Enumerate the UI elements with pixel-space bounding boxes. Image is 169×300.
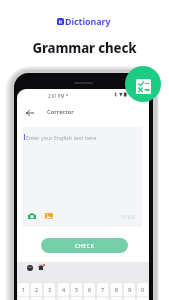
staticText: 5 <box>75 286 79 293</box>
button[interactable]: Dictionary <box>57 15 111 27</box>
button[interactable]: 4 <box>58 283 69 296</box>
staticText: Enter your English text here <box>26 134 97 141</box>
button[interactable]: Grammar check <box>125 66 161 102</box>
staticText: 4 <box>62 286 66 293</box>
button[interactable]: CHECK <box>41 238 128 253</box>
button[interactable]: 1 <box>18 283 29 296</box>
staticText: 8 <box>115 286 119 293</box>
staticText: 0/1000 <box>121 214 136 220</box>
staticText: 0 <box>141 286 145 293</box>
staticText: 2 <box>35 286 39 293</box>
staticText: Dictionary <box>65 15 111 27</box>
staticText: 7 <box>101 286 105 293</box>
button[interactable]: 6 <box>84 283 95 296</box>
staticText: CHECK <box>75 242 95 249</box>
button[interactable]: 9 <box>124 283 135 296</box>
staticText: Corrector <box>47 108 74 116</box>
staticText: Grammar check <box>0 39 169 57</box>
button[interactable]: 7 <box>97 283 108 296</box>
button[interactable]: 0 <box>137 283 148 296</box>
staticText: 1 <box>22 286 26 293</box>
staticText: 6 <box>88 286 92 293</box>
button[interactable]: 8 <box>111 283 122 296</box>
button[interactable]: Emoji <box>26 264 34 272</box>
staticText: 9 <box>128 286 132 293</box>
button[interactable]: 3 <box>44 283 55 296</box>
staticText: 3 <box>48 286 52 293</box>
button[interactable]: 5 <box>71 283 82 296</box>
button[interactable]: Back <box>22 105 37 120</box>
button[interactable]: 2 <box>31 283 42 296</box>
button[interactable]: Stickers <box>37 263 46 272</box>
staticText: 2:01 PM <box>48 93 65 99</box>
button[interactable]: Enter your English text here <box>22 127 142 227</box>
